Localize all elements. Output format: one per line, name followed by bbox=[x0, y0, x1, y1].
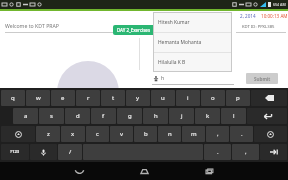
button[interactable]: v bbox=[110, 126, 133, 142]
button[interactable]: n bbox=[158, 126, 181, 142]
button[interactable]: , bbox=[232, 144, 259, 160]
button[interactable]: u bbox=[151, 90, 175, 106]
button[interactable]: Submit bbox=[246, 73, 278, 84]
button[interactable]: , bbox=[206, 126, 229, 142]
button[interactable]: e bbox=[51, 90, 75, 106]
button[interactable]: go bbox=[260, 144, 287, 160]
button[interactable]: del bbox=[251, 90, 287, 106]
button[interactable]: l bbox=[221, 108, 246, 124]
button[interactable]: s bbox=[39, 108, 64, 124]
button[interactable]: t bbox=[101, 90, 125, 106]
button[interactable]: h bbox=[143, 108, 168, 124]
staticText: . bbox=[241, 130, 243, 138]
button[interactable]: shift bbox=[1, 126, 35, 142]
staticText: e bbox=[61, 94, 65, 102]
staticText: Hilalulla K B bbox=[158, 59, 186, 66]
button[interactable]: y bbox=[126, 90, 150, 106]
button[interactable]: q bbox=[1, 90, 25, 106]
button[interactable]: f bbox=[91, 108, 116, 124]
staticText: h bbox=[161, 75, 165, 82]
staticText: Welcome to KDT PRAP bbox=[5, 22, 59, 29]
staticText: f bbox=[102, 112, 105, 120]
staticText: k bbox=[206, 112, 210, 120]
button[interactable]: ?123 bbox=[1, 144, 29, 160]
staticText: u bbox=[161, 94, 165, 102]
staticText: 2, 2014 bbox=[240, 13, 256, 19]
staticText: v bbox=[120, 130, 124, 138]
button[interactable]: enter bbox=[247, 108, 287, 124]
button[interactable]: a bbox=[13, 108, 38, 124]
button[interactable]: shift bbox=[254, 126, 287, 142]
staticText: h bbox=[154, 112, 158, 120]
staticText: g bbox=[128, 112, 132, 120]
staticText: i bbox=[187, 94, 189, 102]
staticText: Hitesh Kumar bbox=[158, 19, 190, 26]
staticText: Hemanta Mohanta bbox=[158, 39, 202, 46]
button[interactable]: d bbox=[65, 108, 90, 124]
button[interactable]: k bbox=[195, 108, 220, 124]
button[interactable]: . bbox=[230, 126, 253, 142]
staticText: c bbox=[96, 130, 99, 138]
button[interactable]: Home bbox=[137, 164, 151, 178]
staticText: . bbox=[217, 148, 219, 156]
staticText: 654 AM bbox=[273, 2, 286, 7]
staticText: z bbox=[47, 130, 50, 138]
staticText: w bbox=[36, 94, 41, 102]
button[interactable]: r bbox=[76, 90, 100, 106]
button[interactable]: Recents bbox=[202, 164, 216, 178]
staticText: 10:00:13 AM bbox=[261, 13, 288, 19]
staticText: o bbox=[211, 94, 215, 102]
button[interactable]: p bbox=[226, 90, 250, 106]
staticText: x bbox=[71, 130, 75, 138]
button[interactable]: b bbox=[134, 126, 157, 142]
staticText: n bbox=[168, 130, 172, 138]
button[interactable]: z bbox=[36, 126, 60, 142]
staticText: s bbox=[50, 112, 53, 120]
button[interactable]: x bbox=[61, 126, 85, 142]
staticText: m bbox=[191, 130, 197, 138]
staticText: p bbox=[236, 94, 240, 102]
staticText: a bbox=[24, 112, 28, 120]
staticText: q bbox=[11, 94, 15, 102]
button[interactable]: g bbox=[117, 108, 142, 124]
staticText: Submit bbox=[254, 76, 271, 82]
button[interactable]: m bbox=[182, 126, 205, 142]
staticText: , bbox=[245, 148, 247, 156]
button[interactable]: c bbox=[86, 126, 109, 142]
staticText: d bbox=[76, 112, 80, 120]
button[interactable]: mic bbox=[30, 144, 57, 160]
staticText: r bbox=[87, 94, 90, 102]
button[interactable]: DAY 2_Exercises bbox=[113, 25, 155, 35]
button[interactable]: Hilalulla K B bbox=[153, 53, 232, 72]
button[interactable]: o bbox=[201, 90, 225, 106]
staticText: DAY 2_Exercises bbox=[117, 27, 151, 33]
staticText: l bbox=[233, 112, 235, 120]
staticText: b bbox=[144, 130, 148, 138]
staticText: y bbox=[136, 94, 140, 102]
button[interactable]: / bbox=[58, 144, 82, 160]
button[interactable]: Hitesh Kumar bbox=[153, 12, 232, 32]
staticText: / bbox=[69, 148, 72, 156]
staticText: j bbox=[181, 112, 183, 120]
staticText: , bbox=[217, 130, 219, 138]
button[interactable]: h bbox=[152, 73, 234, 84]
button[interactable]: . bbox=[204, 144, 231, 160]
button[interactable]: w bbox=[26, 90, 50, 106]
staticText: KDT ID: PPXL385 bbox=[242, 24, 275, 30]
button[interactable]: Back bbox=[72, 164, 86, 178]
button[interactable]: Hemanta Mohanta bbox=[153, 33, 232, 52]
button[interactable]: i bbox=[176, 90, 200, 106]
staticText: t bbox=[112, 94, 115, 102]
staticText: ?123 bbox=[10, 149, 20, 155]
button[interactable]: j bbox=[169, 108, 194, 124]
